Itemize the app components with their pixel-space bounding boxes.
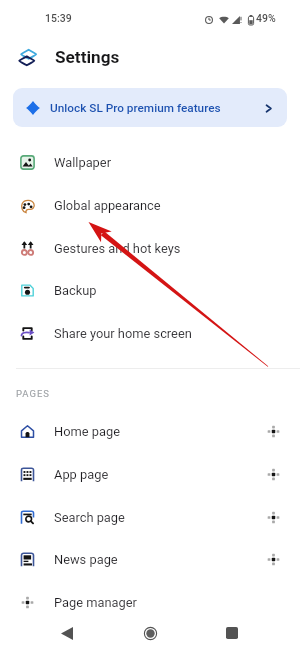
button[interactable]: Page manager bbox=[0, 581, 300, 624]
staticText: Wallpaper bbox=[54, 155, 111, 170]
button[interactable]: App page bbox=[0, 453, 300, 496]
button[interactable]: Recents bbox=[214, 616, 250, 650]
button[interactable]: Home bbox=[132, 616, 168, 650]
button[interactable]: Backup bbox=[0, 269, 300, 312]
staticText: App page bbox=[54, 467, 109, 482]
staticText: Global appearance bbox=[54, 198, 161, 213]
button[interactable]: Gestures and hot keys bbox=[0, 227, 300, 270]
staticText: 49% bbox=[256, 12, 276, 24]
button[interactable]: Back bbox=[49, 616, 85, 650]
button[interactable]: Wallpaper bbox=[0, 141, 300, 184]
staticText: PAGES bbox=[16, 388, 51, 399]
staticText: 15:39 bbox=[45, 12, 72, 24]
button[interactable]: Share your home screen bbox=[0, 312, 300, 355]
staticText: Settings bbox=[55, 47, 120, 67]
staticText: Home page bbox=[54, 424, 120, 439]
staticText: Share your home screen bbox=[54, 326, 192, 341]
staticText: News page bbox=[54, 552, 118, 567]
button[interactable]: News page bbox=[0, 538, 300, 581]
staticText: Search page bbox=[54, 510, 125, 525]
button[interactable]: Global appearance bbox=[0, 184, 300, 227]
staticText: Page manager bbox=[54, 595, 137, 610]
staticText: Backup bbox=[54, 283, 97, 298]
staticText: Unlock SL Pro premium features bbox=[50, 101, 221, 115]
staticText: Gestures and hot keys bbox=[54, 241, 181, 256]
button[interactable]: Home page bbox=[0, 410, 300, 453]
button[interactable]: Unlock SL Pro premium features bbox=[13, 88, 287, 127]
button[interactable]: Search page bbox=[0, 496, 300, 539]
